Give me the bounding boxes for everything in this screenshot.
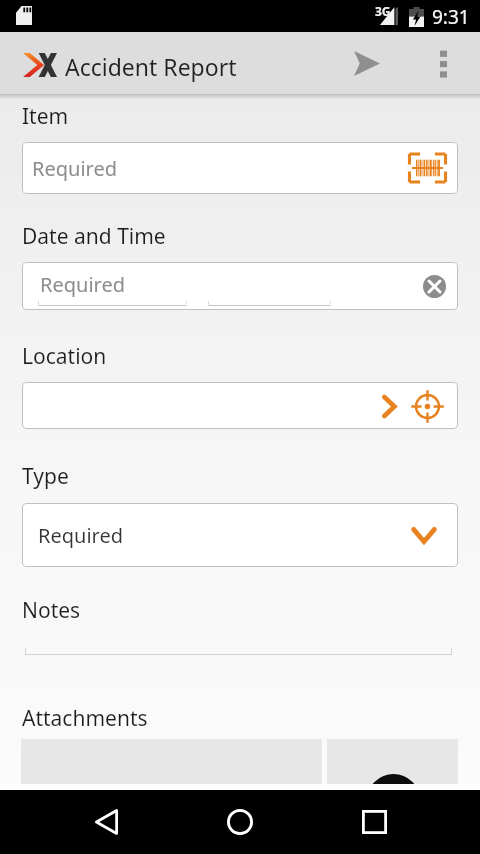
button[interactable]: Add (367, 774, 420, 784)
staticText: Location (22, 342, 107, 371)
button[interactable]: Clear (412, 264, 456, 308)
staticText: Required (32, 155, 117, 182)
button[interactable]: Recent apps (346, 794, 402, 850)
button[interactable]: Open list (401, 512, 447, 558)
staticText: Required (40, 271, 125, 298)
staticText: Notes (22, 596, 81, 625)
staticText: Required (38, 522, 123, 549)
button[interactable]: Add attachment (327, 739, 458, 784)
button[interactable]: Back (78, 794, 134, 850)
button[interactable]: Scan barcode (403, 144, 451, 192)
staticText: 3G (375, 3, 391, 19)
button[interactable]: Pick location (369, 386, 409, 426)
staticText: 9:31 (432, 4, 470, 30)
staticText: Attachments (22, 704, 148, 733)
button[interactable]: Home (212, 794, 268, 850)
button[interactable]: Send (340, 36, 394, 90)
button[interactable]: More options (416, 36, 470, 90)
button[interactable]: Use current location (405, 384, 449, 428)
staticText: Item (22, 102, 69, 131)
staticText: Accident Report (65, 51, 237, 82)
staticText: Date and Time (22, 222, 166, 251)
staticText: Type (22, 462, 69, 491)
